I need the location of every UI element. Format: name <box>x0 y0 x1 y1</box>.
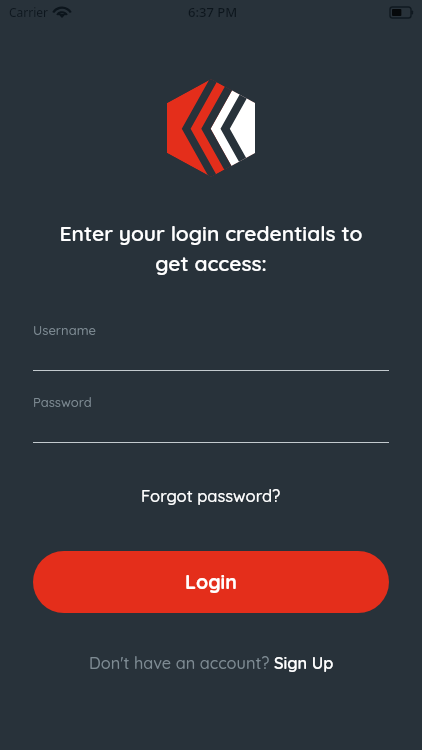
staticText: Password <box>33 394 92 410</box>
button[interactable]: Sign Up <box>274 653 334 673</box>
button[interactable]: Password <box>33 390 389 443</box>
staticText: 6:37 PM <box>188 3 238 21</box>
staticText: Forgot password? <box>141 485 281 506</box>
staticText: Carrier <box>9 4 49 20</box>
button[interactable]: Login <box>33 551 389 613</box>
staticText: Don't have an account? <box>89 653 274 673</box>
button[interactable]: Username <box>33 318 389 371</box>
other: App logo <box>167 79 255 177</box>
staticText: Username <box>33 322 96 338</box>
staticText: Enter your login credentials to get acce… <box>0 220 422 276</box>
staticText: Login <box>185 569 237 593</box>
button[interactable]: Forgot password? <box>131 481 291 510</box>
staticText: Sign Up <box>274 653 334 673</box>
